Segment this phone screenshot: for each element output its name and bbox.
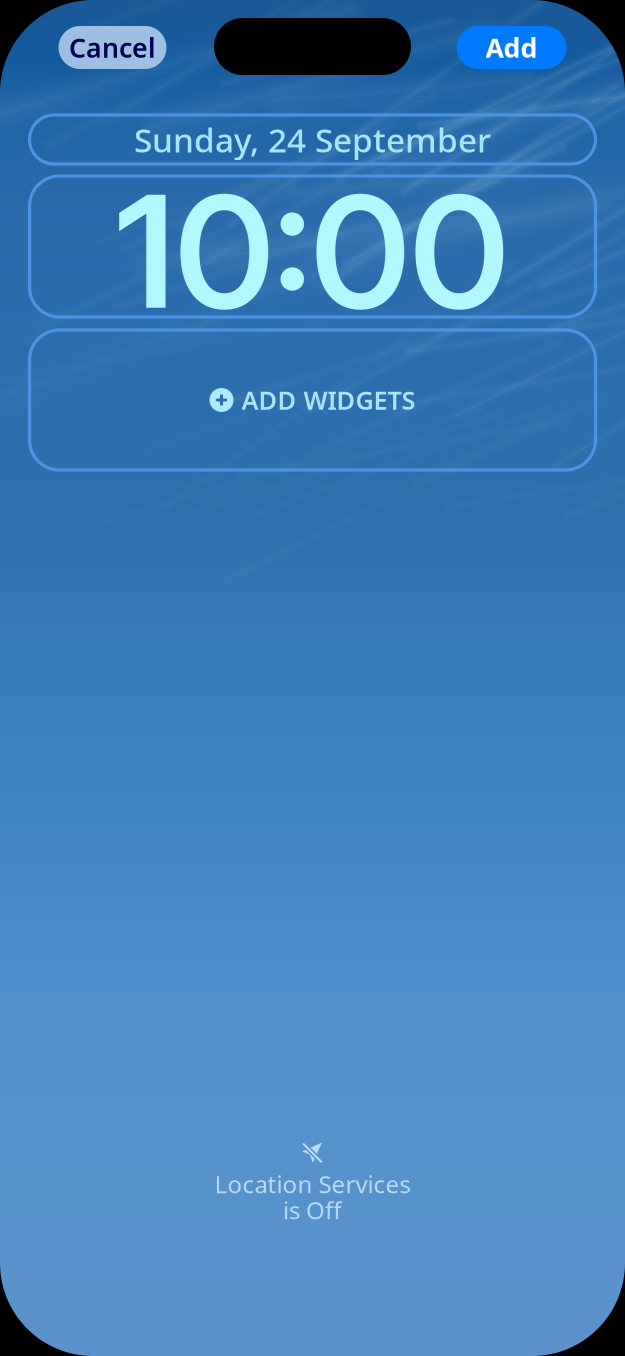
button[interactable]: Add — [456, 26, 566, 69]
button[interactable]: ADD WIDGETS — [29, 330, 595, 470]
staticText: ADD WIDGETS — [241, 383, 415, 417]
button[interactable]: Cancel — [58, 26, 166, 69]
staticText: Add — [485, 30, 537, 65]
staticText: Cancel — [69, 30, 156, 65]
staticText: is Off — [283, 1194, 342, 1226]
staticText: Location Services — [214, 1168, 410, 1200]
staticText: Sunday, 24 September — [134, 117, 491, 162]
staticText: 10:00 — [116, 158, 509, 345]
